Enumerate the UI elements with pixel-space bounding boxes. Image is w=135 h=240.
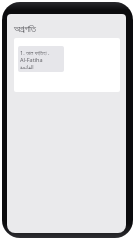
staticText: অগ্রগতি [14,24,36,34]
staticText: Al-Fatiha [20,56,43,63]
staticText: 1. আল ফাতিহা . [20,49,50,56]
button[interactable]: 1. আল ফাতিহা . [18,46,64,72]
staticText: الفاتحة [20,65,34,71]
